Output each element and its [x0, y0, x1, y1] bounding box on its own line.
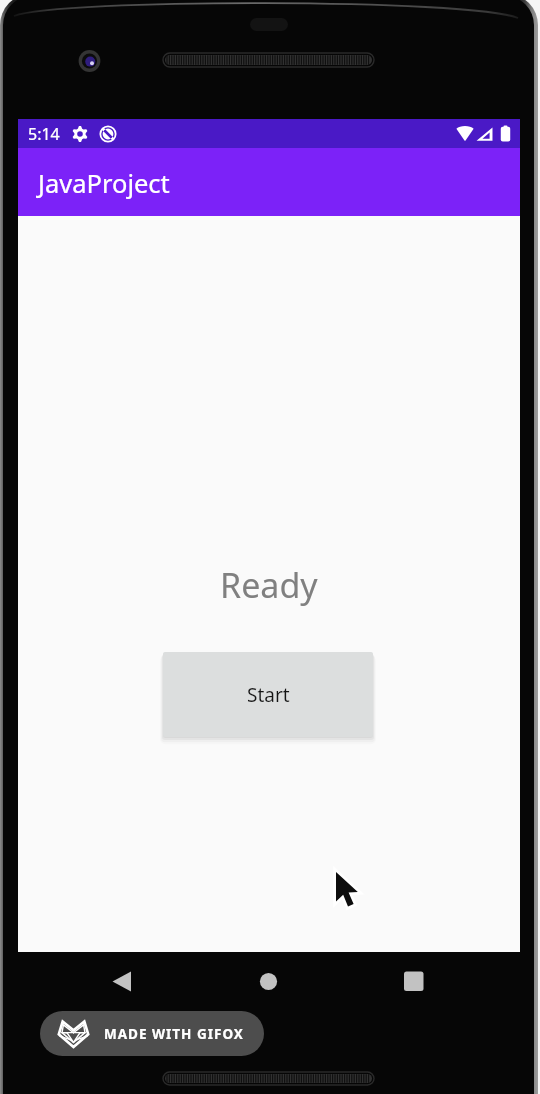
- staticText: Ready: [220, 562, 318, 608]
- staticText: MADE WITH GIFOX: [104, 1025, 244, 1043]
- staticText: JavaProject: [38, 166, 170, 201]
- button[interactable]: Start: [163, 652, 373, 737]
- staticText: 5:14: [28, 123, 60, 145]
- button[interactable]: JavaProject: [18, 148, 520, 216]
- staticText: Start: [247, 682, 290, 708]
- button[interactable]: Back: [97, 957, 147, 1007]
- button[interactable]: MADE WITH GIFOX: [40, 1011, 264, 1056]
- button[interactable]: Home: [243, 957, 293, 1007]
- button[interactable]: Recent apps: [389, 957, 439, 1007]
